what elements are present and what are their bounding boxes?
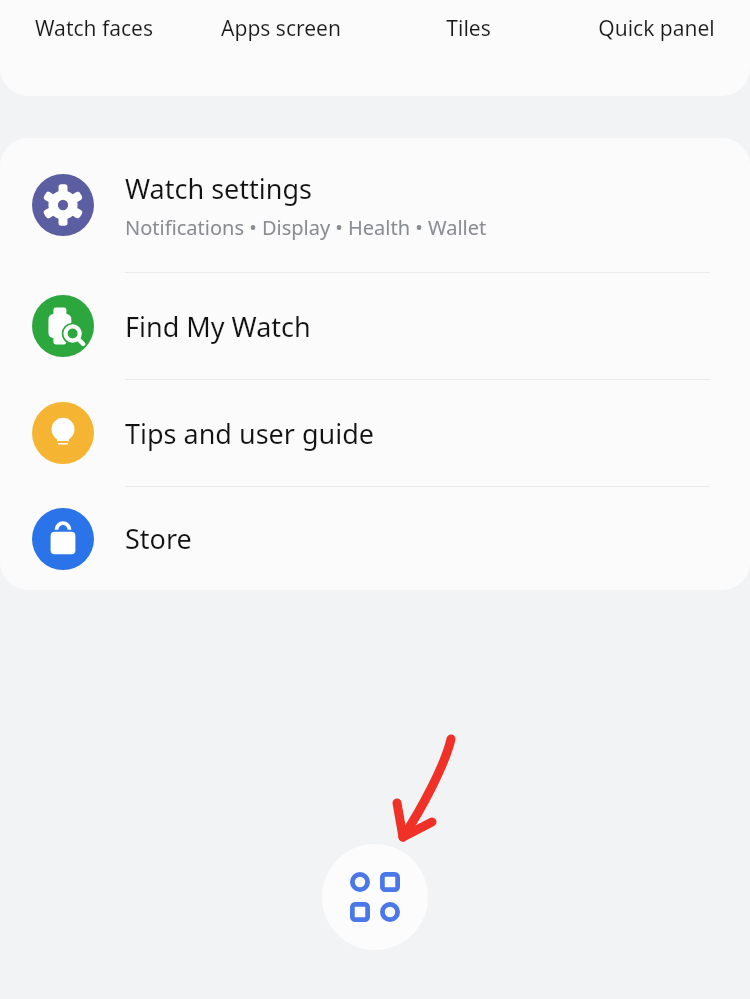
staticText: Watch faces	[35, 14, 153, 43]
button[interactable]: Apps screen	[187, 0, 374, 56]
staticText: Tips and user guide	[125, 415, 375, 452]
button[interactable]: Watch settings	[0, 138, 750, 272]
button[interactable]: Apps	[322, 844, 428, 950]
staticText: Store	[125, 520, 192, 557]
button[interactable]: Find My Watch	[0, 273, 750, 379]
staticText: Notifications • Display • Health • Walle…	[125, 214, 487, 241]
button[interactable]: Store	[0, 487, 750, 590]
button[interactable]: Watch faces	[0, 0, 187, 56]
staticText: Quick panel	[598, 14, 715, 43]
staticText: Find My Watch	[125, 308, 311, 345]
staticText: Tiles	[446, 14, 491, 43]
button[interactable]: Tiles	[374, 0, 562, 56]
button[interactable]: Tips and user guide	[0, 380, 750, 486]
button[interactable]: Quick panel	[562, 0, 750, 56]
staticText: Apps screen	[221, 14, 341, 43]
staticText: Watch settings	[125, 170, 312, 207]
